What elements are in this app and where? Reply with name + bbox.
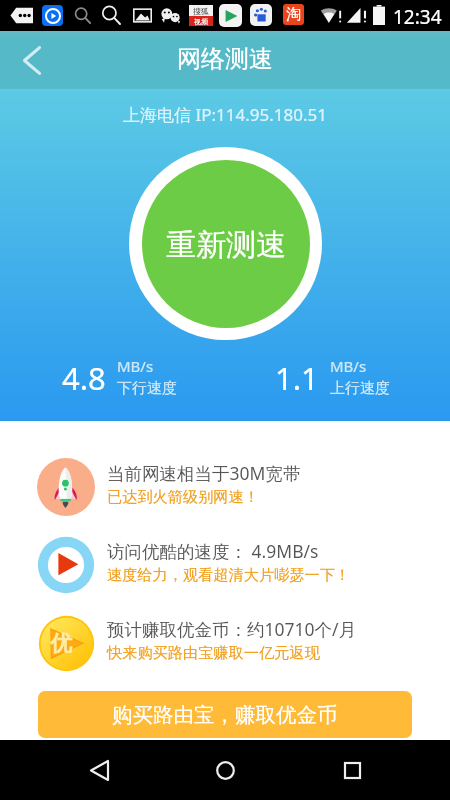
button[interactable]: 访问优酷的速度： 4.9MB/s [0, 526, 450, 604]
button[interactable]: 优 [0, 604, 450, 682]
button[interactable]: Recents [324, 742, 380, 798]
staticText: MB/s [330, 356, 367, 376]
staticText: 当前网速相当于30M宽带 [107, 461, 301, 485]
staticText: 访问优酷的速度： 4.9MB/s [107, 539, 319, 563]
button[interactable]: 重新测速 [142, 160, 310, 328]
staticText: 12:34 [393, 4, 442, 30]
staticText: 网络测速 [177, 44, 273, 74]
staticText: 淘 [286, 5, 301, 24]
staticText: 优 [50, 630, 72, 658]
button[interactable]: 购买路由宝，赚取优金币 [38, 691, 412, 738]
staticText: 上海电信 IP:114.95.180.51 [123, 103, 327, 126]
button[interactable]: Back [0, 32, 56, 88]
staticText: 预计赚取优金币：约10710个/月 [107, 617, 357, 641]
staticText: 已达到火箭级别网速！ [107, 487, 259, 506]
staticText: 重新测速 [166, 226, 286, 264]
staticText: 视频 [194, 17, 208, 26]
staticText: 购买路由宝，赚取优金币 [112, 702, 338, 728]
button[interactable]: Back [71, 742, 127, 798]
staticText: 下行速度 [117, 379, 177, 398]
staticText: 上行速度 [330, 379, 390, 398]
staticText: 1.1 [275, 357, 319, 399]
staticText: 速度给力，观看超清大片嘭瑟一下！ [107, 565, 350, 584]
staticText: MB/s [117, 356, 154, 376]
staticText: 4.8 [62, 357, 106, 399]
staticText: 快来购买路由宝赚取一亿元返现 [107, 643, 320, 662]
staticText: 搜狐 [193, 6, 209, 16]
button[interactable]: 当前网速相当于30M宽带 [0, 448, 450, 526]
button[interactable]: Home [197, 742, 253, 798]
